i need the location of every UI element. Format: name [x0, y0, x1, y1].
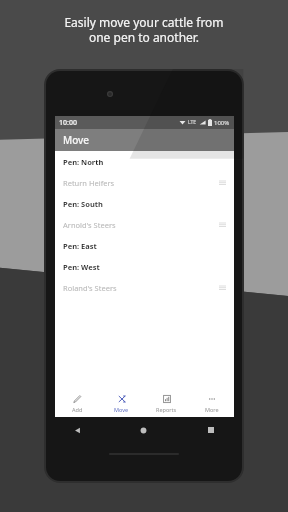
staticText: Return Heifers	[63, 178, 115, 188]
button[interactable]: Move	[99, 394, 144, 413]
button[interactable]: Reports	[144, 394, 189, 413]
button[interactable]: Pen: South	[55, 193, 234, 214]
button[interactable]: Back	[74, 427, 81, 434]
staticText: Roland's Steers	[63, 283, 117, 293]
staticText: Pen: West	[63, 262, 100, 272]
staticText: Easily move your cattle from one pen to …	[64, 14, 224, 45]
button[interactable]: Pen: East	[55, 235, 234, 256]
button[interactable]: Roland's Steers	[55, 277, 234, 298]
staticText: Arnold's Steers	[63, 220, 116, 230]
staticText: LTE	[188, 119, 197, 126]
button[interactable]: Arnold's Steers	[55, 214, 234, 235]
staticText: Pen: South	[63, 199, 103, 209]
button[interactable]: Home	[140, 427, 147, 434]
staticText: 10:00	[59, 118, 77, 128]
button[interactable]: Pen: West	[55, 256, 234, 277]
staticText: 100%	[214, 119, 230, 127]
button[interactable]: More	[189, 394, 234, 413]
staticText: Add	[72, 406, 83, 413]
button[interactable]: Pen: North	[55, 151, 234, 172]
staticText: Pen: East	[63, 241, 97, 251]
staticText: Move	[63, 133, 90, 147]
button[interactable]: Add	[55, 394, 99, 413]
staticText: Pen: North	[63, 157, 104, 167]
button[interactable]: Return Heifers	[55, 172, 234, 193]
staticText: More	[205, 406, 219, 413]
staticText: Reports	[156, 406, 177, 413]
staticText: Move	[114, 406, 129, 413]
